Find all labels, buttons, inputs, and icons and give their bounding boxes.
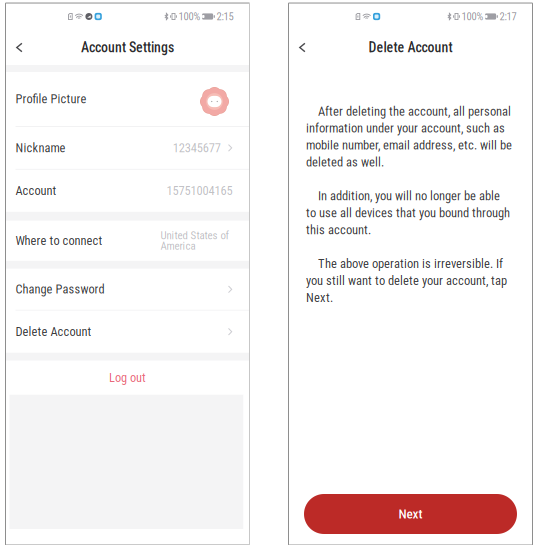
- staticText: 12345677: [173, 141, 221, 155]
- staticText: Account: [15, 183, 56, 198]
- staticText: 100%: [461, 10, 483, 23]
- staticText: After deleting the account, all personal…: [306, 104, 512, 170]
- staticText: 2:15: [216, 10, 233, 23]
- staticText: Next: [398, 506, 422, 522]
- staticText: America: [160, 240, 195, 252]
- button[interactable]: Nickname: [5, 127, 249, 169]
- staticText: The above operation is irreversible. If …: [306, 256, 507, 305]
- button[interactable]: Back: [5, 30, 39, 65]
- button[interactable]: Profile Picture: [5, 72, 249, 126]
- staticText: United States of: [160, 229, 228, 242]
- staticText: 15751004165: [166, 183, 232, 198]
- staticText: Delete Account: [368, 39, 452, 56]
- staticText: Profile Picture: [15, 92, 86, 106]
- staticText: Account Settings: [81, 39, 174, 56]
- staticText: Log out: [109, 370, 146, 385]
- staticText: Delete Account: [15, 324, 91, 339]
- button[interactable]: Delete Account: [5, 311, 249, 353]
- button[interactable]: Where to connect: [5, 221, 249, 261]
- staticText: 100%: [178, 10, 200, 23]
- button[interactable]: Back: [288, 30, 322, 65]
- button[interactable]: Change Password: [5, 269, 249, 310]
- button[interactable]: Next: [304, 494, 517, 534]
- staticText: Where to connect: [15, 233, 102, 248]
- staticText: In addition, you will no longer be able …: [306, 189, 510, 237]
- staticText: 2:17: [499, 10, 516, 23]
- button[interactable]: Account: [5, 170, 249, 212]
- staticText: Nickname: [15, 141, 65, 155]
- button[interactable]: Log out: [5, 361, 249, 395]
- staticText: Change Password: [15, 282, 104, 296]
